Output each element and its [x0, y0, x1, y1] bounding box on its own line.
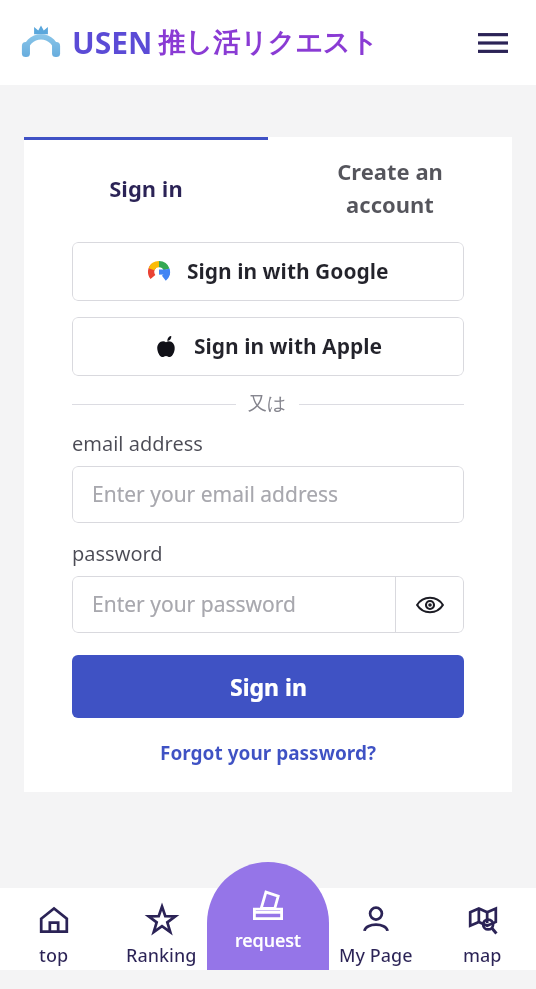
- button[interactable]: Enter your email address: [72, 466, 464, 523]
- button[interactable]: top: [0, 888, 108, 983]
- button[interactable]: Sign in: [24, 140, 268, 235]
- button[interactable]: Forgot your password?: [72, 740, 464, 766]
- staticText: map: [463, 943, 502, 968]
- staticText: 又は: [248, 392, 287, 416]
- staticText: password: [72, 540, 163, 567]
- staticText: Sign in: [109, 173, 183, 203]
- staticText: Enter your email address: [92, 480, 339, 509]
- staticText: My Page: [339, 943, 413, 968]
- button[interactable]: My Page: [322, 888, 429, 983]
- staticText: email address: [72, 430, 203, 457]
- button[interactable]: Enter your password: [72, 576, 395, 633]
- button[interactable]: Menu: [472, 22, 514, 64]
- staticText: 推し活リクエスト: [158, 26, 378, 60]
- button[interactable]: Sign in with Google: [72, 242, 464, 301]
- staticText: Enter your password: [92, 590, 296, 619]
- staticText: Create an account: [337, 156, 443, 219]
- button[interactable]: Create an account: [268, 140, 512, 235]
- button[interactable]: request: [207, 862, 329, 970]
- button[interactable]: Sign in with Apple: [72, 317, 464, 376]
- button[interactable]: map: [429, 888, 536, 983]
- staticText: request: [235, 928, 302, 953]
- button[interactable]: Show password: [396, 576, 464, 633]
- staticText: top: [39, 943, 69, 968]
- staticText: Sign in: [230, 671, 307, 702]
- staticText: Forgot your password?: [160, 740, 376, 766]
- button[interactable]: Ranking: [108, 888, 215, 983]
- staticText: Sign in with Google: [187, 257, 389, 286]
- staticText: USEN: [72, 22, 153, 63]
- button[interactable]: Sign in: [72, 655, 464, 718]
- staticText: Sign in with Apple: [194, 332, 382, 361]
- staticText: Ranking: [126, 943, 197, 968]
